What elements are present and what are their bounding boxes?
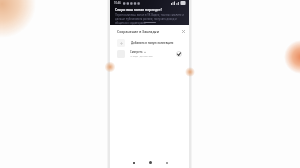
staticText: Переносим ваш канал в VK Видео, там вы с… [115, 13, 184, 25]
staticText: Сохранение в Закладки [117, 29, 159, 34]
staticText: 10:46 [114, 1, 121, 5]
staticText: Скоро ваш канал переедет! [115, 7, 162, 11]
button[interactable]: Home [147, 159, 154, 166]
staticText: Смотреть [130, 50, 143, 54]
button[interactable]: Смотреть [110, 48, 189, 60]
button[interactable]: Close [180, 28, 186, 34]
button[interactable]: Back [130, 159, 137, 166]
staticText: Добавить в новую коллекцию [131, 41, 174, 45]
button[interactable]: Добавить в новую коллекцию [110, 37, 189, 48]
button[interactable]: Recents [163, 159, 170, 166]
staticText: 14 видео · Доступно вам [130, 55, 153, 58]
